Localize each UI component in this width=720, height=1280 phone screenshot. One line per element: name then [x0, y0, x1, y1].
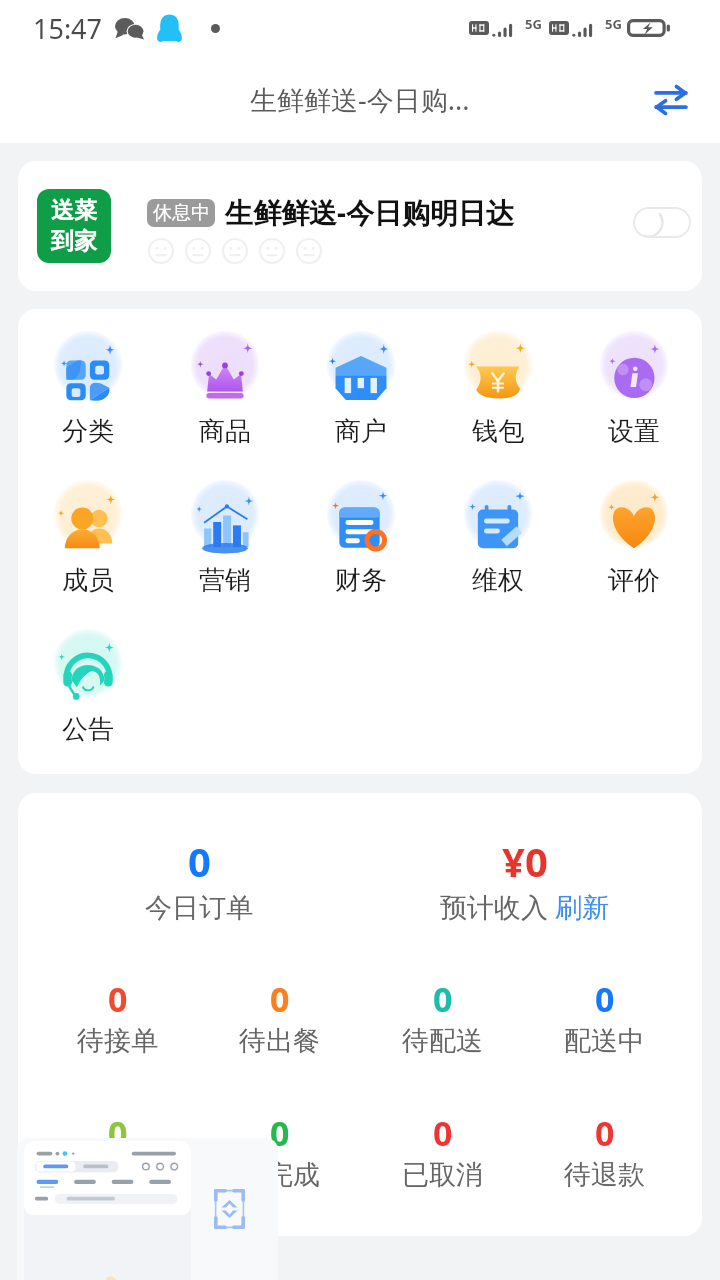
staticText: 分类: [62, 415, 114, 448]
staticText: 已完成: [239, 1158, 320, 1188]
staticText: 商品: [199, 415, 251, 448]
button[interactable]: 营销: [157, 476, 293, 604]
staticText: 维权: [472, 564, 524, 597]
button[interactable]: 商品: [157, 327, 293, 455]
button[interactable]: 0: [199, 976, 359, 1054]
button[interactable]: [24, 1141, 191, 1280]
staticText: 今日订单: [145, 891, 253, 924]
staticText: 生鲜鲜送-今日购...: [250, 81, 470, 118]
button[interactable]: 0: [524, 1110, 684, 1188]
staticText: 待配送: [402, 1024, 483, 1054]
staticText: 设置: [608, 415, 660, 448]
button[interactable]: 钱包: [430, 327, 566, 455]
button[interactable]: 送菜: [18, 161, 702, 291]
button[interactable]: 0: [524, 976, 684, 1054]
staticText: 0: [108, 976, 128, 1022]
button[interactable]: 维权: [430, 476, 566, 604]
button[interactable]: 评价: [566, 476, 702, 604]
staticText: 休息中: [153, 201, 210, 225]
button[interactable]: 0: [362, 1110, 522, 1188]
button[interactable]: ¥0: [424, 834, 624, 924]
button[interactable]: 财务: [293, 476, 429, 604]
button[interactable]: 0: [199, 1110, 359, 1188]
staticText: 15:47: [33, 10, 103, 47]
staticText: 0: [595, 1110, 615, 1156]
staticText: 刷新: [555, 891, 609, 924]
staticText: 财务: [335, 564, 387, 597]
staticText: 待退款: [564, 1158, 645, 1188]
button[interactable]: 0: [37, 1110, 197, 1188]
staticText: 公告: [62, 713, 114, 746]
button[interactable]: Switch shop: [645, 74, 697, 126]
staticText: 0: [188, 834, 211, 888]
staticText: 预计收入: [440, 891, 548, 924]
button[interactable]: 0: [37, 976, 197, 1054]
button[interactable]: 分类: [20, 327, 156, 455]
staticText: 5G: [525, 15, 542, 33]
staticText: 0: [433, 1110, 453, 1156]
staticText: 待出餐: [239, 1024, 320, 1054]
staticText: 配送中: [564, 1024, 645, 1054]
staticText: 生鲜鲜送-今日购明日达: [225, 193, 514, 231]
staticText: 商户: [335, 415, 387, 448]
staticText: 评价: [608, 564, 660, 597]
staticText: 0: [595, 976, 615, 1022]
button[interactable]: 公告: [20, 625, 156, 753]
button[interactable]: Store open toggle: [633, 207, 691, 238]
staticText: 0: [270, 976, 290, 1022]
staticText: 到家: [51, 227, 97, 256]
button[interactable]: 成员: [20, 476, 156, 604]
button[interactable]: 商户: [293, 327, 429, 455]
staticText: 已取消: [402, 1158, 483, 1188]
button[interactable]: 刷新: [555, 891, 609, 924]
staticText: 成员: [62, 564, 114, 597]
staticText: 0: [108, 1110, 128, 1156]
button[interactable]: 0: [99, 834, 299, 924]
button[interactable]: Scroll capture: [214, 1189, 245, 1229]
staticText: 0: [270, 1110, 290, 1156]
staticText: 送菜: [51, 196, 97, 225]
button[interactable]: 0: [362, 976, 522, 1054]
staticText: 待接单: [77, 1024, 158, 1054]
staticText: 已送达: [77, 1158, 158, 1188]
staticText: 钱包: [472, 415, 524, 448]
staticText: 0: [433, 976, 453, 1022]
staticText: 营销: [199, 564, 251, 597]
button[interactable]: 设置: [566, 327, 702, 455]
staticText: 5G: [605, 15, 622, 33]
staticText: ¥0: [502, 834, 548, 888]
